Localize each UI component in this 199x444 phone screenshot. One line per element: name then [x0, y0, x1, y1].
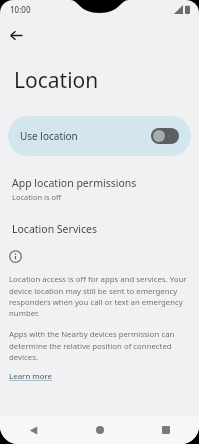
- button[interactable]: Home: [67, 416, 133, 444]
- staticText: App location permissions: [12, 176, 137, 190]
- button[interactable]: Recent apps: [133, 416, 199, 444]
- button[interactable]: App location permissions: [0, 174, 199, 204]
- staticText: Location: [14, 66, 99, 95]
- staticText: Location access is off for apps and serv…: [9, 274, 187, 318]
- button[interactable]: Back: [0, 416, 67, 444]
- staticText: Location is off: [12, 192, 62, 202]
- button[interactable]: Use location: [8, 116, 191, 156]
- staticText: Learn more: [9, 371, 53, 382]
- button[interactable]: Learn more: [9, 371, 53, 382]
- button[interactable]: Back: [3, 22, 29, 48]
- staticText: Use location: [20, 129, 78, 143]
- staticText: Location Services: [12, 222, 97, 236]
- staticText: 10:00: [10, 4, 31, 15]
- staticText: Apps with the Nearby devices permission …: [9, 329, 187, 362]
